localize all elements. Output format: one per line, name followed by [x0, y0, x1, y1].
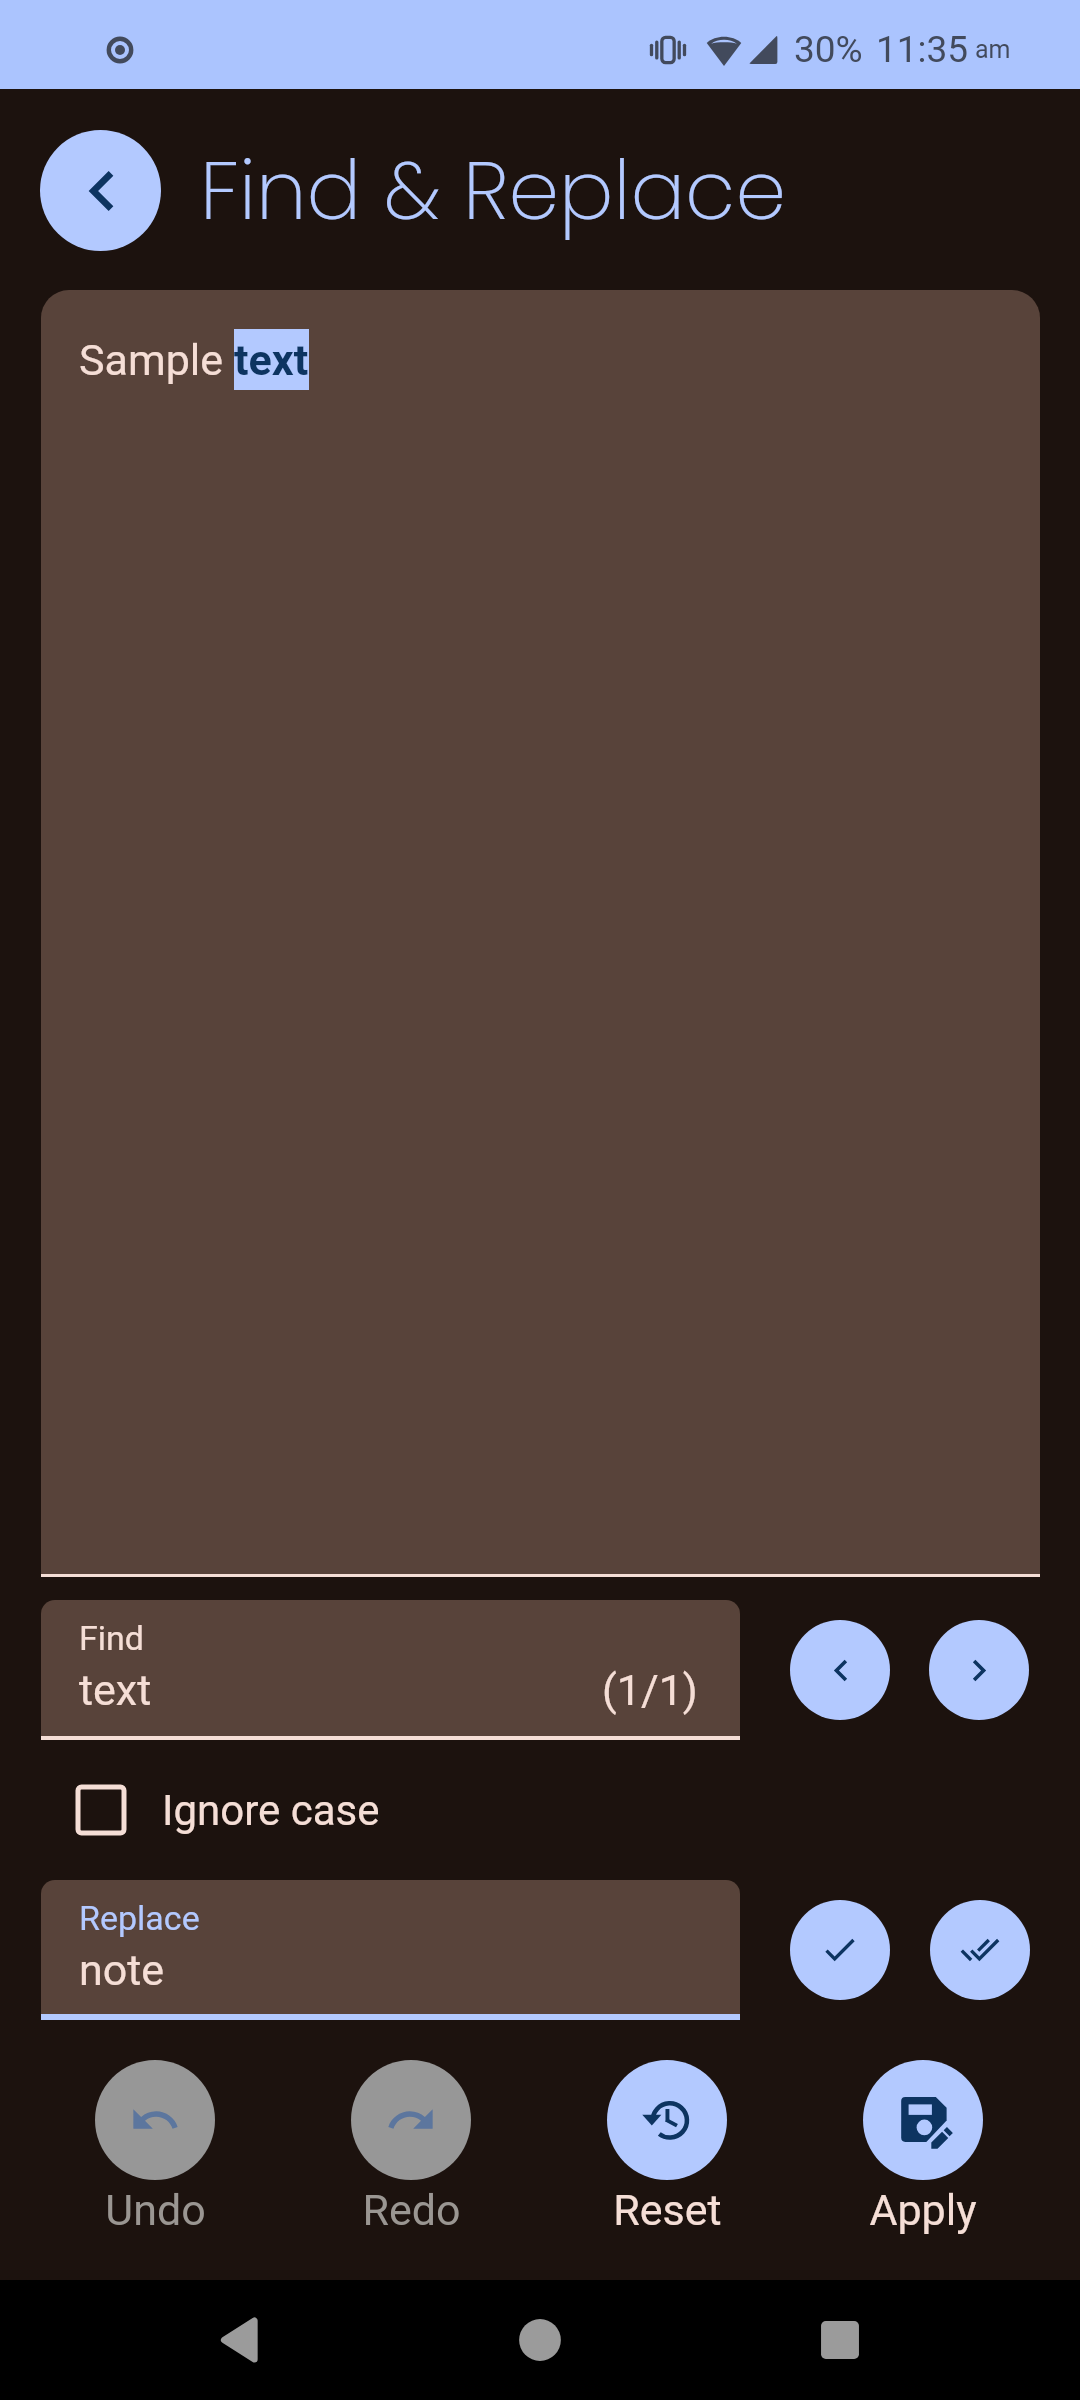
button[interactable]: Previous match — [790, 1620, 890, 1720]
staticText: Find — [79, 1618, 145, 1658]
staticText: note — [79, 1945, 165, 1995]
other: Recording indicator — [100, 30, 140, 70]
staticText: Apply — [869, 2185, 977, 2235]
staticText: (1/1) — [602, 1665, 698, 1715]
staticText: Ignore case — [162, 1786, 380, 1835]
button[interactable]: Redo — [321, 2060, 501, 2235]
staticText: Replace — [79, 1898, 200, 1938]
button[interactable]: Back — [40, 130, 161, 251]
staticText: Redo — [362, 2185, 461, 2235]
staticText: Reset — [613, 2185, 722, 2235]
button[interactable]: Replace all — [930, 1900, 1030, 2000]
staticText: text — [79, 1665, 152, 1715]
staticText: 30% — [794, 28, 863, 71]
button[interactable]: Next match — [929, 1620, 1029, 1720]
button[interactable]: Ignore case — [60, 1755, 480, 1865]
staticText: Undo — [105, 2185, 206, 2235]
staticText: 11:35 — [876, 28, 969, 71]
button[interactable]: Sample — [41, 290, 1040, 1574]
staticText: Sample — [79, 335, 234, 385]
button[interactable]: Undo — [65, 2060, 245, 2235]
staticText: am — [975, 35, 1011, 64]
staticText: text — [234, 335, 309, 385]
button[interactable]: Apply — [833, 2060, 1013, 2235]
button[interactable]: Find — [41, 1600, 740, 1736]
button[interactable]: Reset — [577, 2060, 757, 2235]
button[interactable]: Home — [480, 2280, 600, 2400]
button[interactable]: Replace — [790, 1900, 890, 2000]
button[interactable]: Recents — [780, 2280, 900, 2400]
button[interactable]: Back — [180, 2280, 300, 2400]
staticText: Find & Replace — [200, 134, 787, 247]
button[interactable]: Replace — [41, 1880, 740, 2014]
